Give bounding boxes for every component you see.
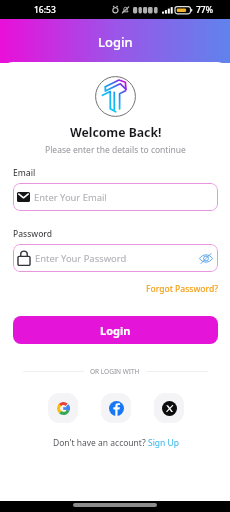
- staticText: Email: [13, 167, 36, 179]
- button[interactable]: Forgot Password?: [146, 283, 218, 295]
- button[interactable]: Enter Your Password: [13, 244, 218, 272]
- staticText: Password: [13, 228, 53, 240]
- button[interactable]: Enter Your Email: [13, 183, 218, 211]
- button[interactable]: Sign in with Facebook: [101, 393, 131, 423]
- staticText: Forgot Password?: [146, 283, 218, 295]
- staticText: Enter Your Password: [35, 252, 127, 265]
- staticText: Don't have an account?: [53, 437, 148, 449]
- staticText: Login: [100, 323, 131, 338]
- staticText: 77%: [196, 4, 213, 16]
- staticText: Login: [98, 33, 133, 51]
- staticText: Enter Your Email: [34, 191, 107, 204]
- staticText: Sign Up: [148, 437, 179, 449]
- button[interactable]: Sign Up: [148, 437, 179, 449]
- staticText: 16:53: [34, 4, 56, 16]
- staticText: OR LOGIN WITH: [90, 367, 140, 376]
- button[interactable]: Sign in with X: [154, 393, 184, 423]
- button[interactable]: Show password: [198, 251, 213, 266]
- staticText: Welcome Back!: [70, 124, 162, 141]
- button[interactable]: Login: [13, 316, 218, 344]
- button[interactable]: Sign in with Google: [48, 393, 78, 423]
- staticText: Please enter the details to continue: [45, 144, 186, 156]
